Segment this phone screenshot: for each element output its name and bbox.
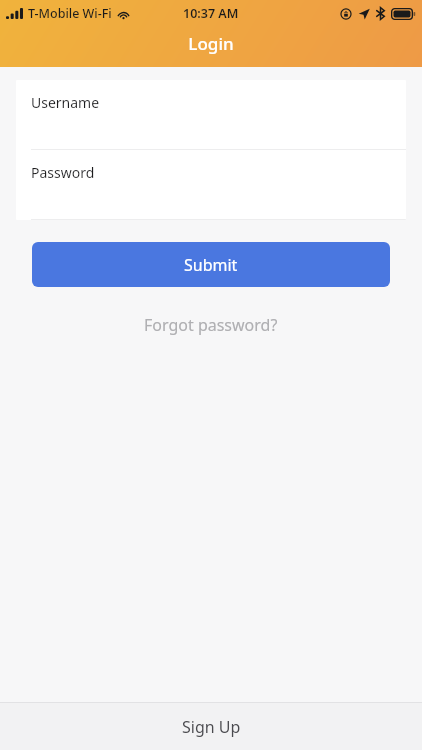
staticText: Sign Up xyxy=(182,716,241,738)
staticText: 10:37 AM xyxy=(183,5,239,22)
button[interactable]: Username xyxy=(16,80,406,149)
staticText: Password xyxy=(31,163,95,182)
staticText: Login xyxy=(0,32,422,55)
button[interactable]: Password xyxy=(16,150,406,219)
staticText: T-Mobile Wi-Fi xyxy=(28,5,112,22)
button[interactable]: Submit xyxy=(32,242,390,287)
button[interactable]: Forgot password? xyxy=(130,309,292,341)
staticText: Username xyxy=(31,93,100,112)
staticText: Forgot password? xyxy=(144,314,278,336)
button[interactable]: Sign Up xyxy=(0,702,422,750)
staticText: Submit xyxy=(184,254,238,276)
